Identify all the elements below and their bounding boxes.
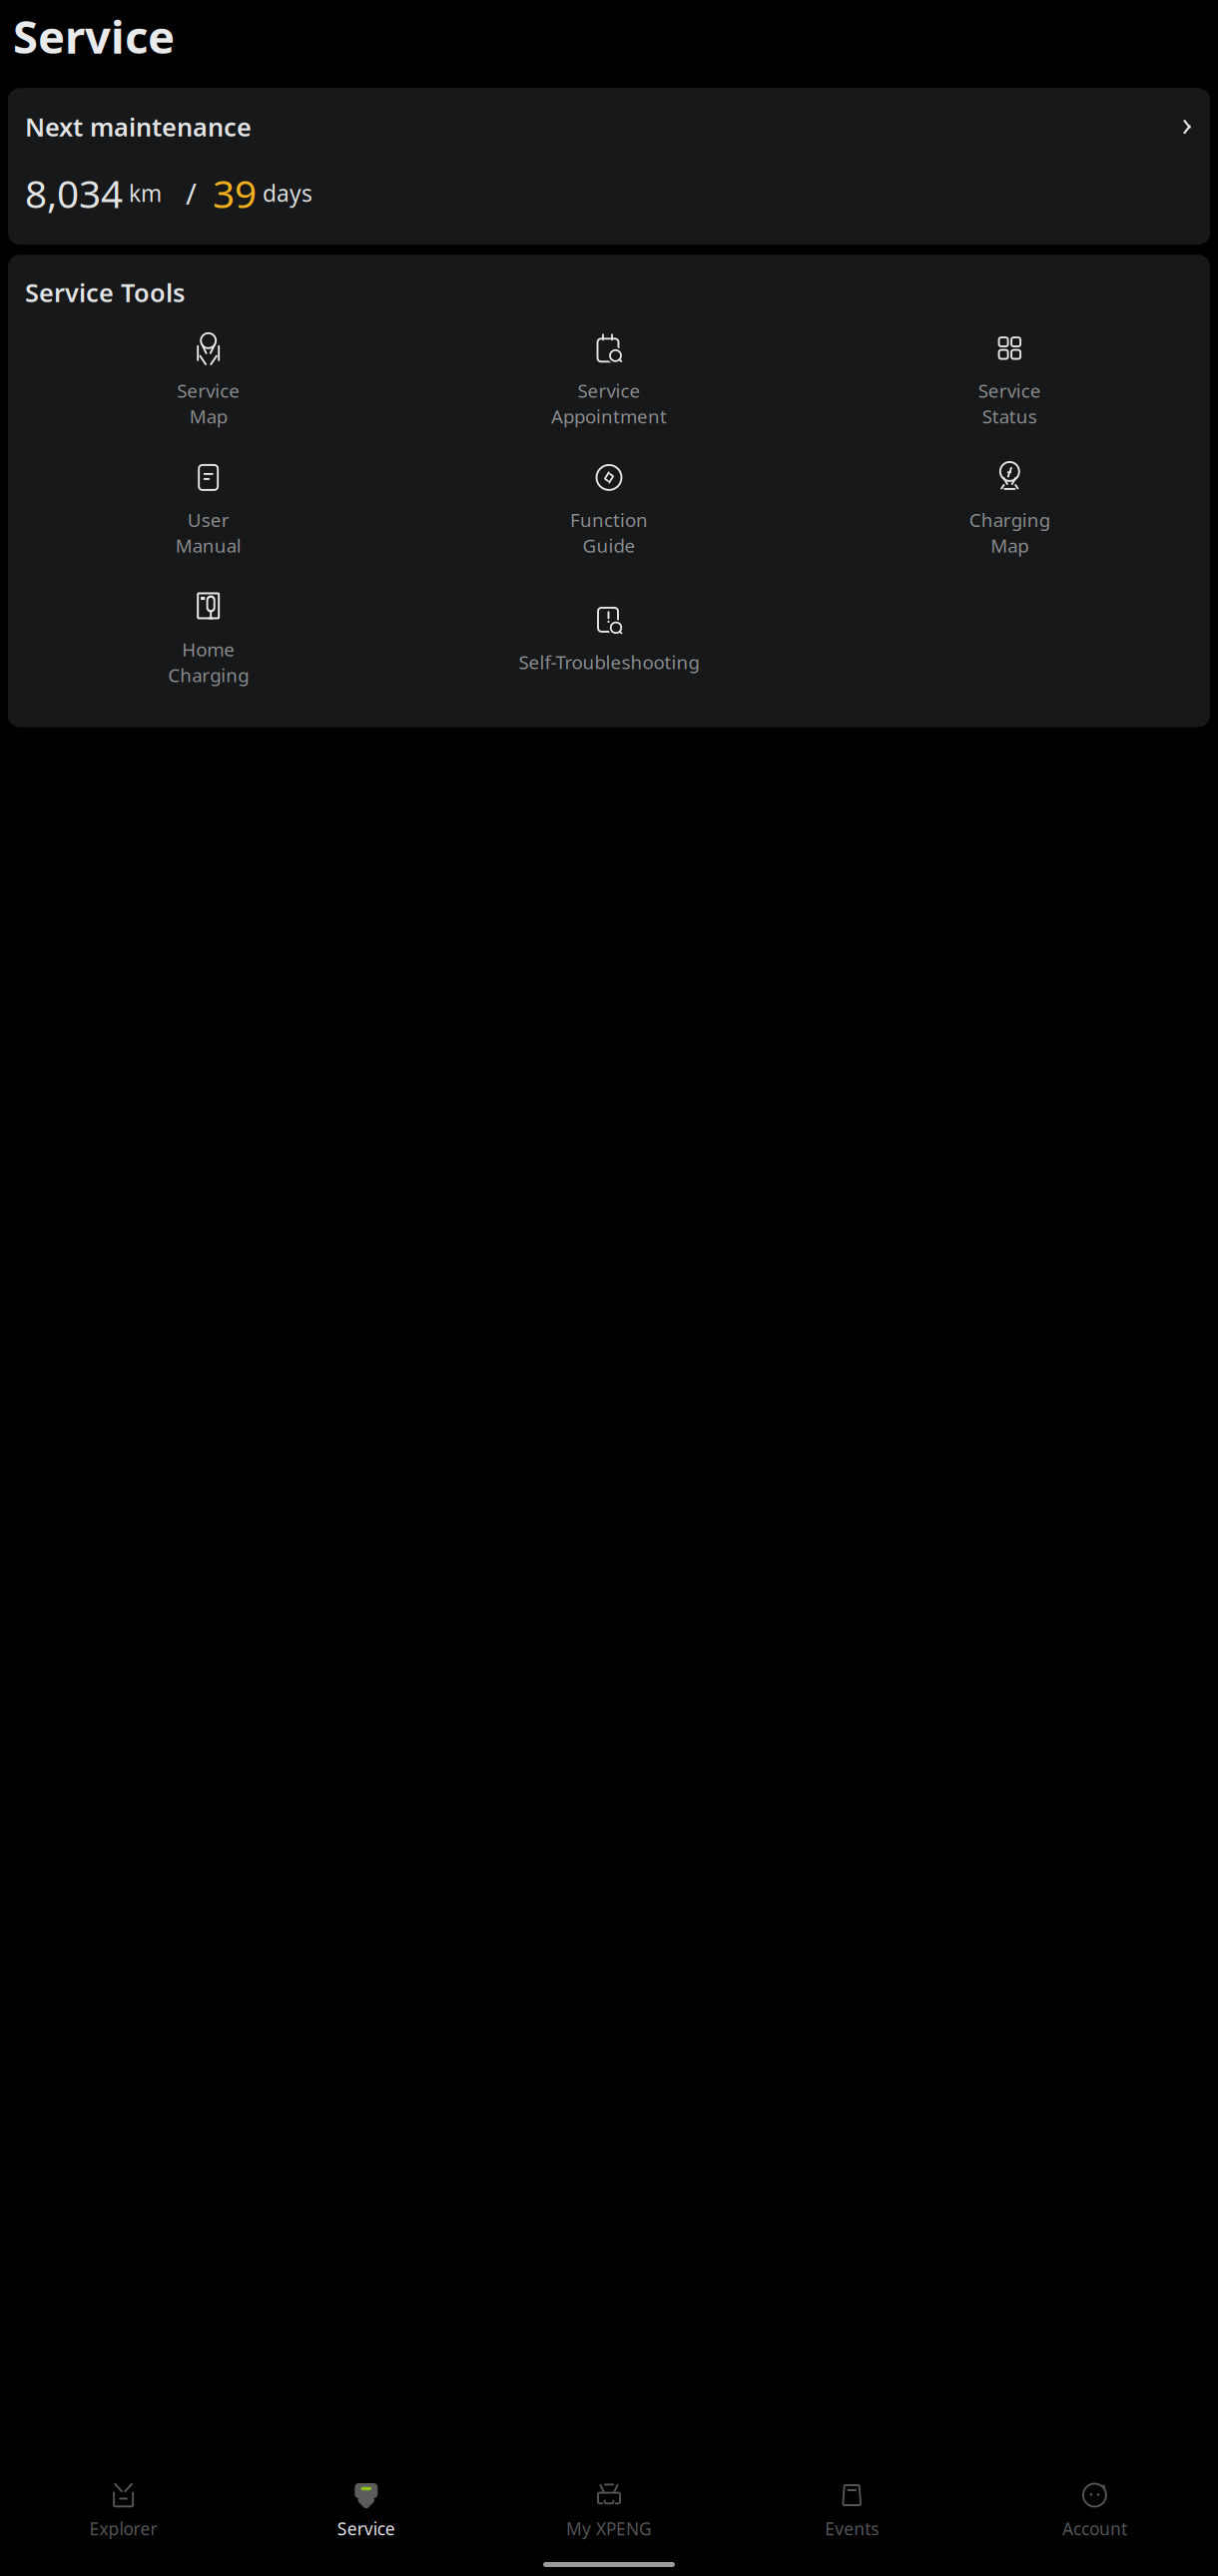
staticText: My XPENG [566, 2517, 652, 2540]
staticText: Function [570, 507, 648, 532]
staticText: Account [1062, 2517, 1127, 2540]
button[interactable]: Service [245, 2474, 488, 2540]
staticText: 39 [213, 167, 257, 219]
staticText: Map [189, 404, 227, 429]
button[interactable]: My XPENG [488, 2474, 730, 2540]
staticText: Self-Troubleshooting [519, 650, 699, 674]
button[interactable]: Service [8, 325, 409, 435]
staticText: / [162, 174, 213, 213]
staticText: Service [578, 378, 640, 403]
staticText: Manual [175, 533, 241, 558]
staticText: Charging [969, 507, 1050, 532]
staticText: Events [825, 2517, 879, 2540]
button[interactable]: Charging [809, 455, 1210, 564]
staticText: Service [177, 378, 240, 403]
button[interactable]: Service [809, 325, 1210, 435]
staticText: 8,034 [25, 167, 123, 219]
staticText: Service [978, 378, 1041, 403]
staticText: days [257, 178, 312, 208]
staticText: Home [182, 637, 235, 662]
staticText: Explorer [89, 2517, 157, 2540]
staticText: User [187, 507, 229, 532]
button[interactable]: Home [8, 584, 409, 693]
button[interactable]: Events [730, 2474, 973, 2540]
button[interactable]: Account [973, 2474, 1216, 2540]
button[interactable]: Next maintenance [8, 88, 1210, 245]
staticText: Guide [583, 533, 635, 558]
staticText: Appointment [551, 404, 667, 429]
staticText: Map [991, 533, 1029, 558]
staticText: Service [13, 6, 175, 66]
staticText: Service [337, 2517, 395, 2540]
button[interactable]: User [8, 455, 409, 564]
button[interactable]: Self-Troubleshooting [409, 597, 809, 680]
staticText: Next maintenance [25, 110, 252, 144]
staticText: Charging [168, 663, 249, 687]
staticText: km [123, 178, 162, 208]
staticText: Service Tools [25, 276, 185, 309]
button[interactable]: Explorer [2, 2474, 245, 2540]
button[interactable]: Function [409, 455, 809, 564]
button[interactable]: Service [409, 325, 809, 435]
staticText: Status [982, 404, 1037, 429]
